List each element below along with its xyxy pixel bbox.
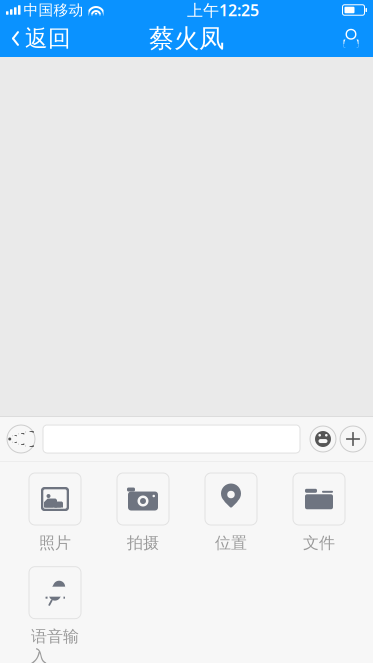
- button[interactable]: 照片: [29, 473, 81, 553]
- button[interactable]: 联系人资料: [329, 20, 373, 57]
- staticText: 拍摄: [127, 533, 159, 553]
- staticText: 文件: [303, 533, 335, 553]
- staticText: 蔡火凤: [149, 23, 224, 54]
- button[interactable]: 返回: [0, 20, 81, 57]
- button[interactable]: 语音输入: [29, 567, 81, 663]
- button[interactable]: 拍摄: [117, 473, 169, 553]
- staticText: 上午12:25: [187, 0, 259, 21]
- staticText: 照片: [39, 533, 71, 553]
- staticText: 中国移动: [23, 1, 83, 19]
- button[interactable]: 表情: [308, 420, 338, 458]
- button[interactable]: 位置: [205, 473, 257, 553]
- staticText: 语音输入: [31, 627, 79, 663]
- staticText: 位置: [215, 533, 247, 553]
- button[interactable]: 语音: [5, 420, 37, 458]
- button[interactable]: 更多: [338, 420, 368, 458]
- staticText: 返回: [25, 25, 71, 52]
- button[interactable]: 文件: [293, 473, 345, 553]
